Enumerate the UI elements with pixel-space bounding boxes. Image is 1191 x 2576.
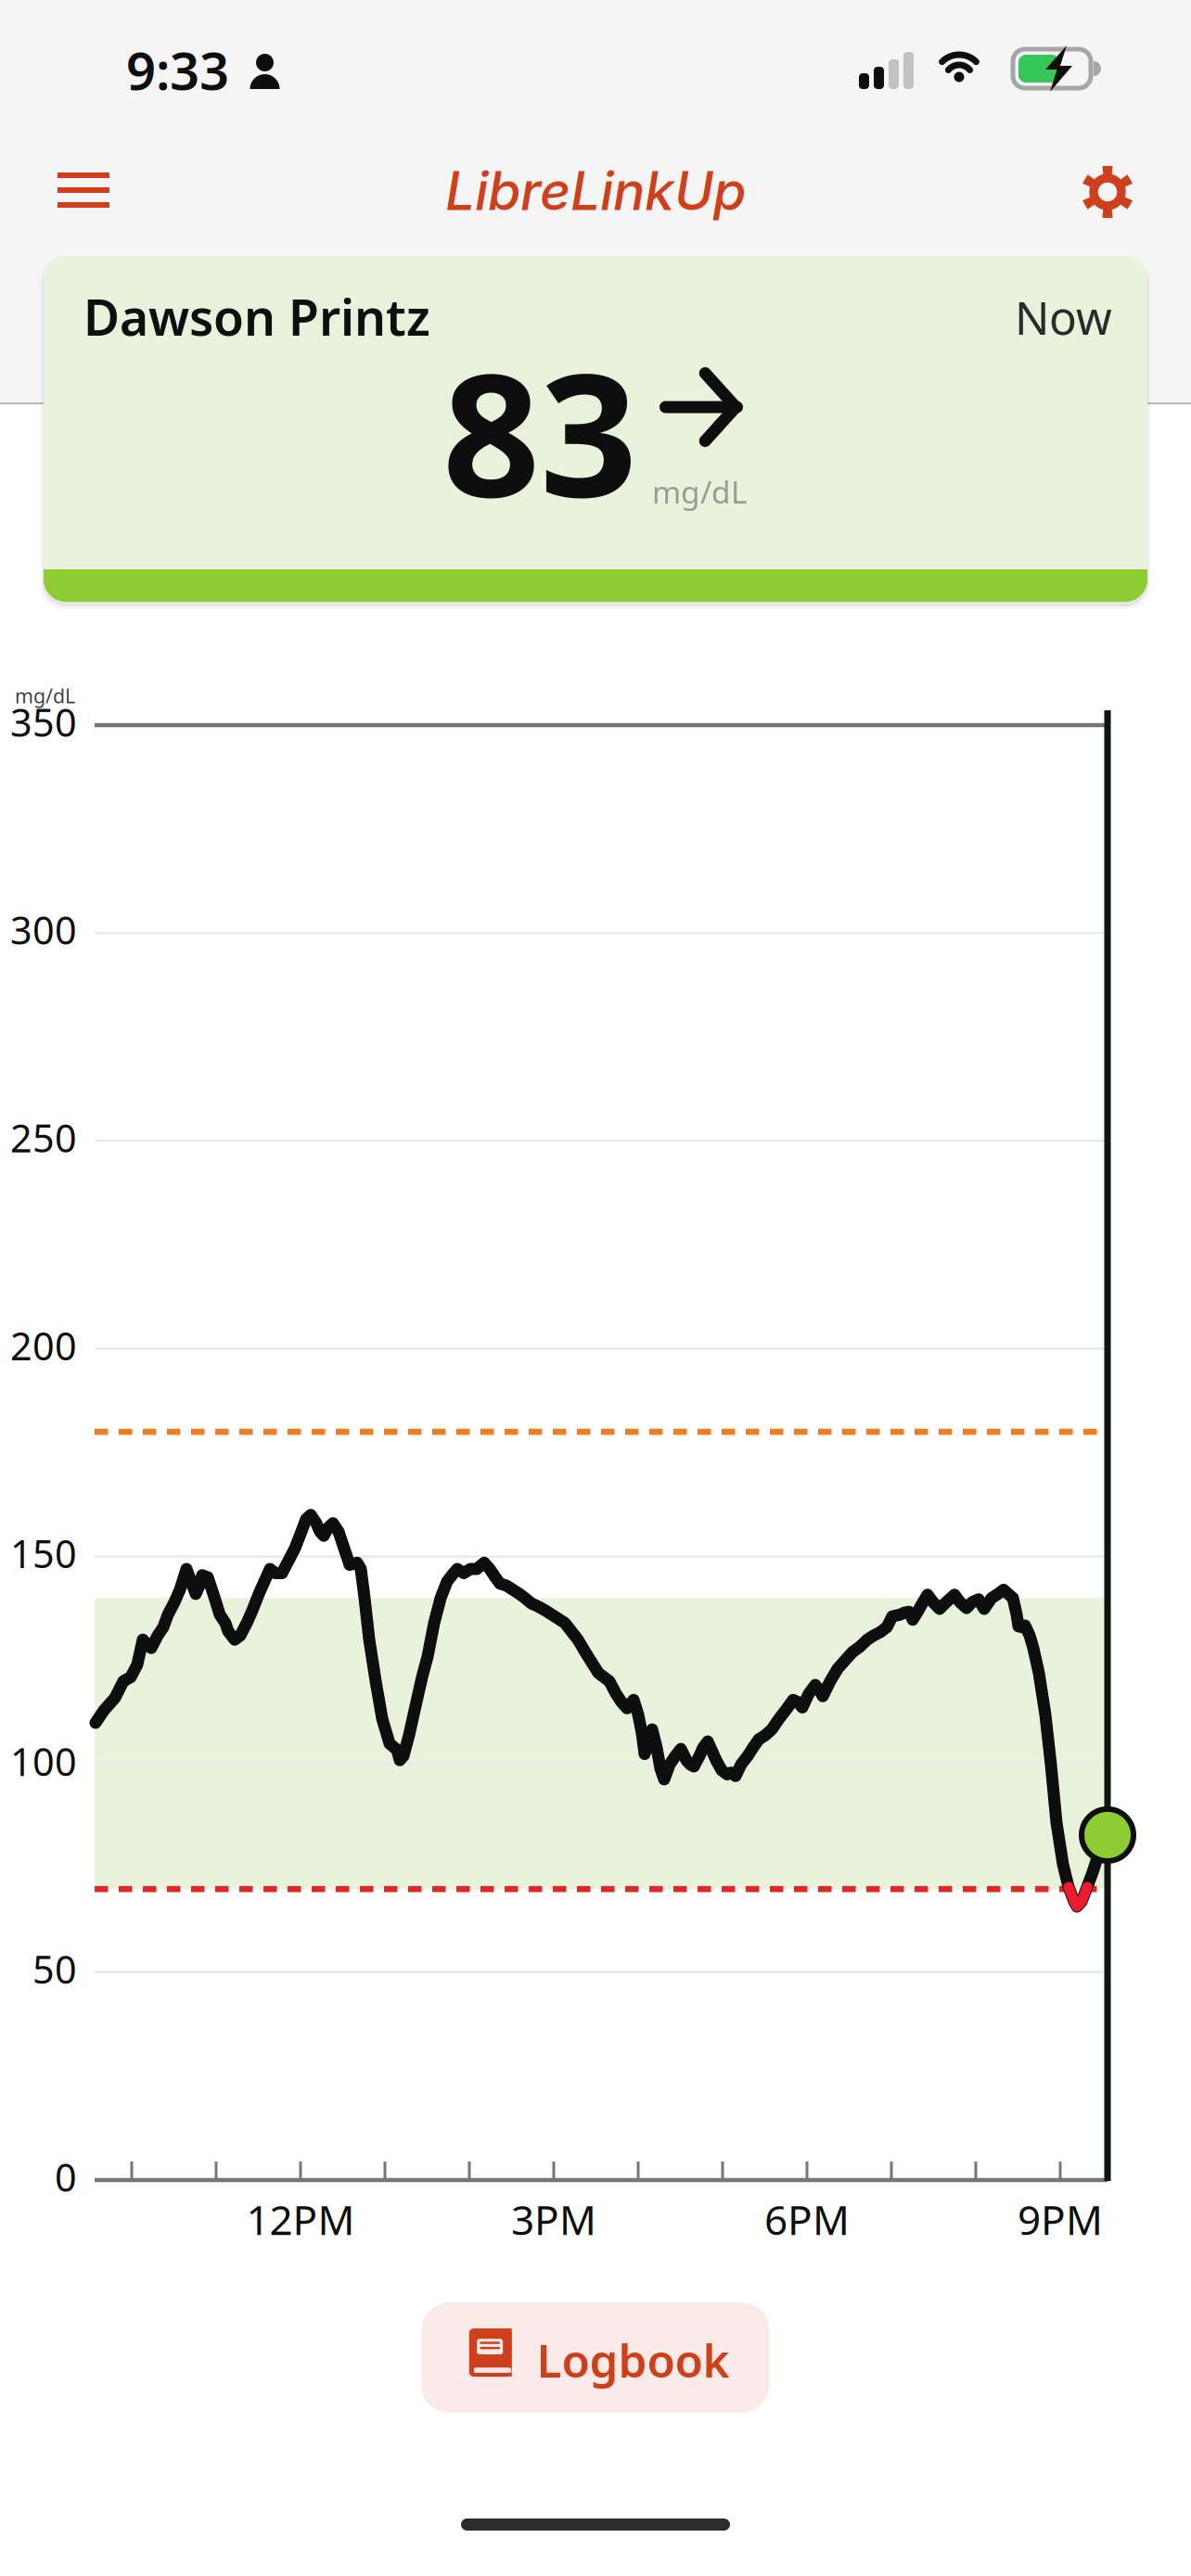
staticText: 250 [10, 1112, 77, 1163]
button[interactable]: Logbook [422, 2302, 769, 2413]
staticText: 200 [10, 1320, 77, 1371]
button[interactable]: Menu [28, 134, 139, 246]
staticText: 12PM [246, 2192, 355, 2246]
staticText: 100 [10, 1736, 77, 1787]
staticText: mg/dL [652, 471, 747, 512]
staticText: 83 [442, 317, 637, 544]
staticText: 350 [10, 696, 77, 747]
staticText: Logbook [537, 2329, 730, 2390]
staticText: 9PM [1018, 2192, 1103, 2246]
staticText: 3PM [511, 2192, 596, 2246]
staticText: 50 [32, 1943, 77, 1994]
button[interactable]: Settings [1052, 136, 1163, 248]
staticText: Now [1015, 287, 1112, 347]
staticText: LibreLinkUp [445, 159, 746, 223]
staticText: 0 [55, 2151, 77, 2202]
staticText: mg/dL [15, 682, 75, 709]
staticText: 300 [10, 904, 77, 955]
staticText: 150 [10, 1528, 77, 1579]
staticText: 9:33 [126, 35, 229, 104]
staticText: 6PM [764, 2192, 850, 2246]
staticText: Dawson Printz [83, 284, 430, 349]
